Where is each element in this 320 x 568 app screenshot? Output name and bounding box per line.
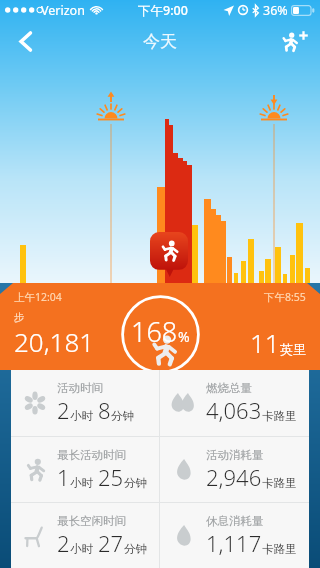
staticText: 英里 — [280, 341, 306, 357]
staticText: 卡路里 — [262, 409, 297, 423]
staticText: 今天 — [143, 31, 177, 52]
staticText: % — [178, 327, 190, 346]
staticText: 8 — [98, 395, 111, 425]
button[interactable]: 燃烧总量 — [160, 370, 309, 436]
staticText: 卡路里 — [262, 542, 297, 556]
button[interactable]: Add activity — [274, 20, 316, 62]
button[interactable]: Back — [4, 20, 46, 62]
staticText: 25 — [98, 462, 124, 492]
staticText: 最长活动时间 — [57, 448, 126, 462]
staticText: 168 — [131, 313, 178, 350]
staticText: 上午12:04 — [14, 290, 62, 304]
staticText: 下午8:55 — [264, 290, 306, 304]
staticText: 燃烧总量 — [206, 381, 252, 395]
button[interactable]: 活动消耗量 — [160, 437, 309, 502]
staticText: 分钟 — [124, 476, 147, 490]
staticText: Verizon — [41, 2, 85, 19]
staticText: 1,117 — [206, 528, 262, 558]
staticText: 27 — [98, 528, 124, 558]
staticText: 下午9:00 — [138, 2, 188, 19]
button[interactable]: 活动时间 — [11, 370, 159, 436]
staticText: 2 — [57, 528, 70, 558]
staticText: 分钟 — [124, 542, 147, 556]
staticText: 2,946 — [206, 462, 262, 492]
staticText: 最长空闲时间 — [57, 514, 126, 528]
button[interactable]: 最长空闲时间 — [11, 503, 159, 568]
button[interactable]: 最长活动时间 — [11, 437, 159, 502]
staticText: 小时 — [70, 476, 93, 490]
staticText: 1 — [57, 462, 70, 492]
staticText: 休息消耗量 — [206, 514, 264, 528]
staticText: 20,181 — [14, 324, 95, 359]
staticText: 36% — [263, 2, 288, 19]
staticText: 2 — [57, 395, 70, 425]
staticText: 小时 — [70, 409, 93, 423]
staticText: 卡路里 — [262, 476, 297, 490]
staticText: 分钟 — [111, 409, 134, 423]
staticText: 4,063 — [206, 395, 262, 425]
staticText: 11 — [250, 325, 280, 360]
staticText: 步 — [14, 311, 25, 324]
staticText: 活动时间 — [57, 381, 103, 395]
staticText: 小时 — [70, 542, 93, 556]
staticText: 活动消耗量 — [206, 448, 264, 462]
button[interactable]: 休息消耗量 — [160, 503, 309, 568]
